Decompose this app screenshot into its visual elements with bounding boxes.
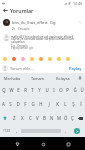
staticText: X [21, 115, 24, 121]
button[interactable]: H [37, 97, 45, 111]
staticText: S [9, 101, 12, 107]
button[interactable]: Send [69, 125, 85, 137]
staticText: U [45, 87, 49, 93]
button[interactable]: U [43, 83, 50, 97]
staticText: . [65, 128, 67, 134]
button[interactable]: F [21, 97, 29, 111]
staticText: O [59, 87, 63, 93]
staticText: Q [2, 87, 6, 93]
staticText: N [50, 115, 54, 121]
button[interactable]: J [45, 97, 53, 111]
button[interactable]: M [55, 111, 62, 125]
button[interactable]: Emoji [0, 55, 9, 62]
button[interactable]: N [48, 111, 55, 125]
button[interactable]: Emoji [9, 55, 18, 62]
button[interactable]: R [22, 83, 29, 97]
button[interactable]: Back [0, 6, 10, 15]
staticText: 2s Cevapla [12, 27, 30, 31]
button[interactable]: İ [77, 97, 85, 111]
button[interactable]: Kolaysa [50, 73, 75, 83]
button[interactable]: A [0, 97, 7, 111]
staticText: Paylaşılanları gör [11, 46, 34, 50]
button[interactable]: Back [9, 137, 25, 150]
staticText: Ğ [73, 87, 77, 93]
button[interactable]: Home [35, 137, 51, 150]
button[interactable]: Emoji [45, 55, 54, 62]
button[interactable]: Backspace [76, 111, 85, 125]
staticText: T [31, 87, 34, 93]
button[interactable]: Ö [62, 111, 69, 125]
button[interactable]: Emoji [27, 55, 36, 62]
staticText: P [66, 87, 69, 93]
staticText: Ö [64, 115, 68, 121]
button[interactable]: Q [0, 83, 8, 97]
button[interactable]: P [64, 83, 71, 97]
staticText: olursa ve sonsuza kadar karşılıklı olmas… [11, 37, 74, 41]
button[interactable]: W [8, 83, 15, 97]
button[interactable]: E [15, 83, 22, 97]
button[interactable]: , [13, 125, 20, 137]
staticText: İ [80, 101, 82, 107]
staticText: E [17, 87, 20, 93]
staticText: H [39, 101, 43, 107]
staticText: F [24, 101, 27, 107]
button[interactable]: D [14, 97, 21, 111]
button[interactable]: Ç [69, 111, 76, 125]
staticText: V [36, 115, 39, 121]
button[interactable]: O [57, 83, 64, 97]
button[interactable]: ?123 [0, 125, 13, 137]
button[interactable]: I [50, 83, 57, 97]
staticText: Z [13, 115, 16, 121]
staticText: Ş [72, 101, 75, 107]
button[interactable]: Merhaba [0, 73, 25, 83]
button[interactable]: V [34, 111, 41, 125]
staticText: B [43, 115, 46, 121]
button[interactable]: T [29, 83, 36, 97]
button[interactable]: L [61, 97, 69, 111]
staticText: ?123 [3, 129, 10, 133]
button[interactable]: B [41, 111, 48, 125]
button[interactable]: Ğ [71, 83, 78, 97]
button[interactable]: Emoji [54, 55, 63, 62]
button[interactable]: Emoji [36, 55, 45, 62]
button[interactable]: Tamam [25, 73, 50, 83]
staticText: K [56, 101, 59, 107]
button[interactable]: Z [10, 111, 18, 125]
button[interactable]: G [29, 97, 37, 111]
staticText: Paylaş [69, 66, 82, 71]
button[interactable]: X [18, 111, 26, 125]
staticText: D [16, 101, 20, 107]
button[interactable]: Voice input [75, 73, 85, 83]
button[interactable]: K [53, 97, 61, 111]
button[interactable]: Like [77, 19, 83, 25]
button[interactable]: Emoji [18, 55, 27, 62]
staticText: Y [38, 87, 41, 93]
staticText: L [64, 101, 67, 107]
staticText: bhs_ilu_lhas_effect Gg [12, 20, 56, 26]
staticText: R [24, 87, 27, 93]
button[interactable]: Ü [78, 83, 85, 97]
button[interactable]: Paylaşılanları gör [11, 46, 34, 50]
staticText: 1 g Cevapla [11, 44, 28, 48]
button[interactable]: Emoji [63, 55, 72, 62]
staticText: Ü [80, 87, 84, 93]
button[interactable]: S [7, 97, 14, 111]
staticText: Kolaysa [56, 76, 70, 81]
staticText: Tamam [31, 76, 45, 81]
staticText: J [48, 101, 50, 107]
button[interactable]: C [26, 111, 34, 125]
staticText: I [53, 87, 55, 93]
staticText: çalışanları [11, 40, 25, 44]
staticText: Ç [71, 115, 74, 121]
staticText: mafied23 Sonuçlandı ve adı yazılmıştır, … [11, 35, 74, 39]
button[interactable]: . [62, 125, 69, 137]
button[interactable]: Y [36, 83, 43, 97]
button[interactable]: Recents [60, 137, 76, 150]
button[interactable]: Ş [69, 97, 77, 111]
button[interactable]: Paylaş [68, 65, 83, 72]
staticText: M [57, 115, 61, 121]
staticText: Yorum ekle... [10, 66, 34, 71]
button[interactable]: Shift [0, 111, 10, 125]
staticText: W [9, 87, 14, 93]
